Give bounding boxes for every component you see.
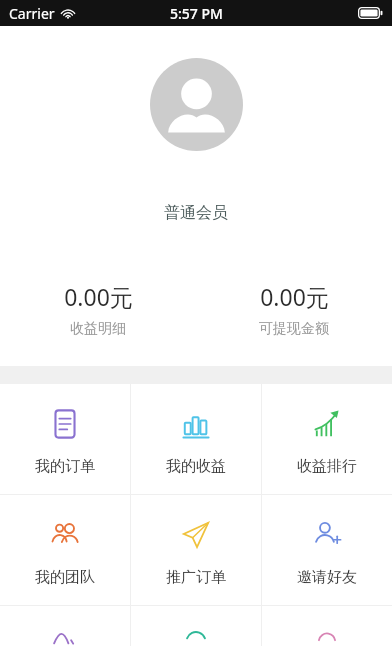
button[interactable]: 我的团队 xyxy=(0,495,130,605)
staticText: 我的订单 xyxy=(35,457,95,476)
staticText: 推广订单 xyxy=(166,568,226,587)
staticText: 邀请好友 xyxy=(297,568,357,587)
button[interactable]: 我的收益 xyxy=(131,384,261,494)
button[interactable]: 0.00元 xyxy=(0,279,196,340)
staticText: 我的团队 xyxy=(35,568,95,587)
button[interactable]: Menu item xyxy=(131,606,261,646)
button[interactable]: 我的订单 xyxy=(0,384,130,494)
staticText: 5:57 PM xyxy=(170,4,223,23)
button[interactable]: Menu item xyxy=(0,606,130,646)
staticText: 我的收益 xyxy=(166,457,226,476)
button[interactable]: Profile avatar xyxy=(150,58,243,151)
button[interactable]: 推广订单 xyxy=(131,495,261,605)
staticText: 收益排行 xyxy=(297,457,357,476)
staticText: 普通会员 xyxy=(164,203,228,223)
button[interactable]: 收益排行 xyxy=(262,384,392,494)
staticText: 收益明细 xyxy=(70,320,126,338)
staticText: 0.00元 xyxy=(260,281,329,312)
button[interactable]: 邀请好友 xyxy=(262,495,392,605)
staticText: 可提现金额 xyxy=(259,320,329,338)
staticText: Carrier xyxy=(9,4,55,23)
staticText: 0.00元 xyxy=(64,281,133,312)
button[interactable]: 0.00元 xyxy=(196,279,392,340)
button[interactable]: Menu item xyxy=(262,606,392,646)
